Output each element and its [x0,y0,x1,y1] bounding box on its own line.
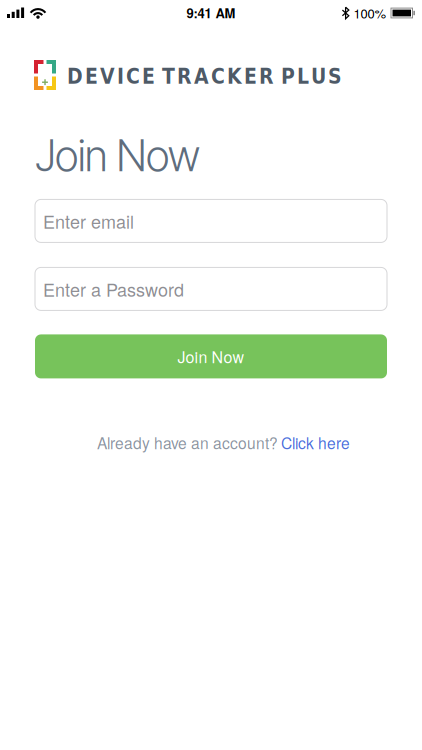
button[interactable]: Enter a Password [35,267,387,310]
button[interactable]: Click here [281,431,350,454]
staticText: Join Now [35,130,201,181]
button[interactable]: Enter email [35,199,387,242]
staticText: Already have an account? [97,431,278,454]
staticText: Enter a Password [43,276,184,302]
staticText: 9:41 AM [186,4,235,22]
staticText: Click here [281,431,350,454]
staticText: D E V I C E T R A C K E R P L U S [67,64,342,89]
staticText: Join Now [177,345,244,368]
staticText: Enter email [43,208,134,234]
button[interactable]: Join Now [35,334,387,378]
staticText: 100% [353,4,386,22]
